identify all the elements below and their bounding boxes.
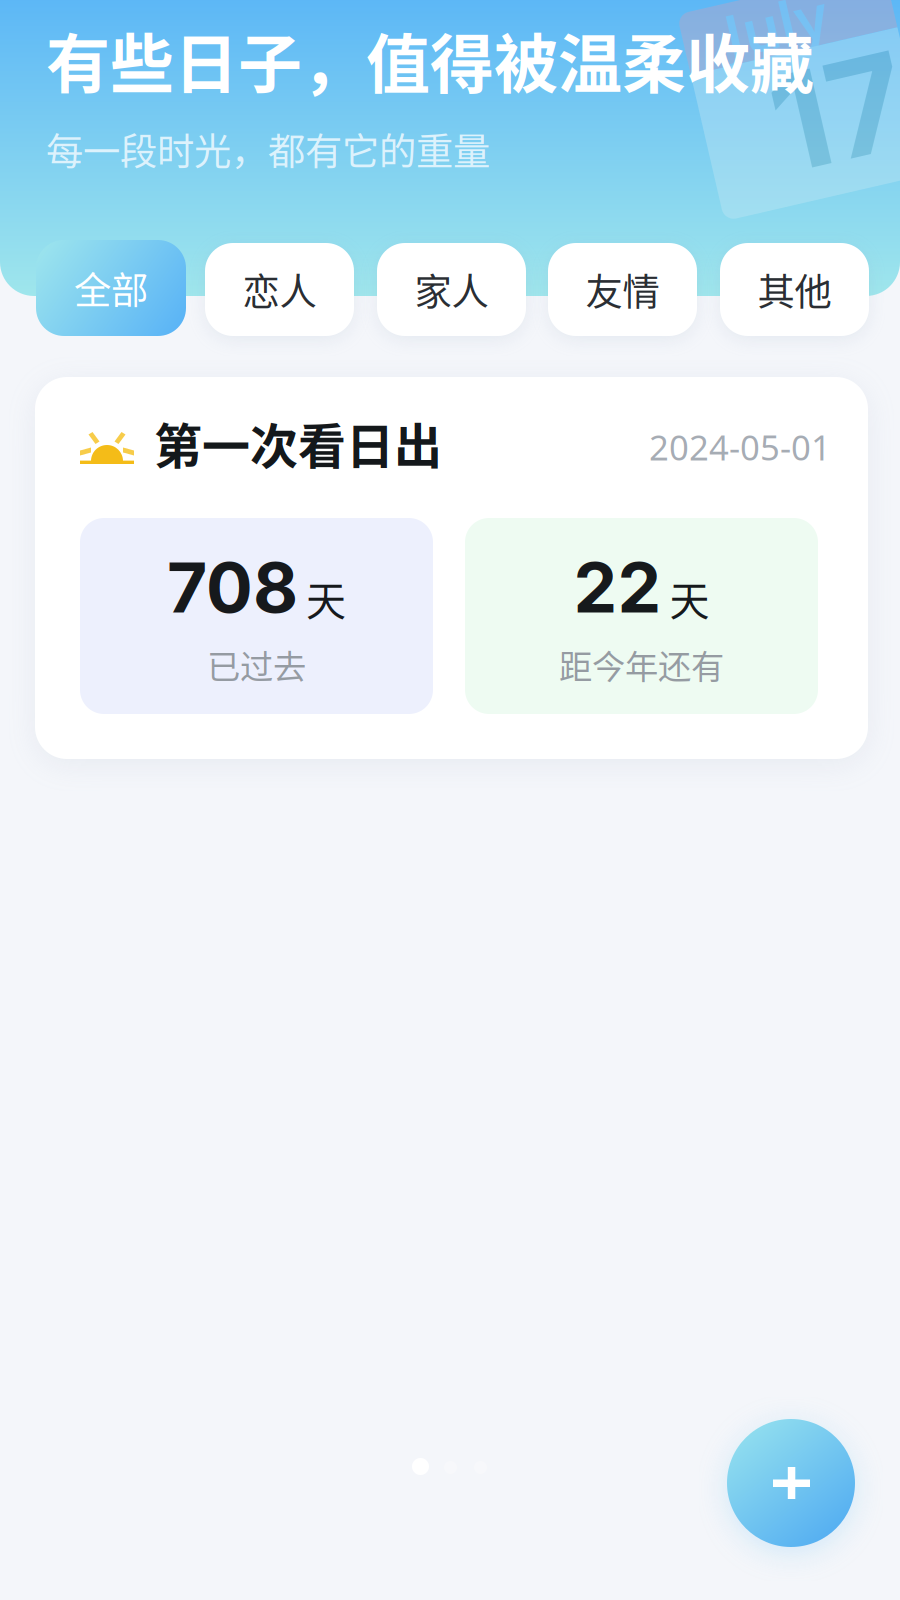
staticText: 第一次看日出 <box>154 408 442 477</box>
staticText: 2024-05-01 <box>649 424 831 470</box>
staticText: 17 <box>766 38 900 200</box>
staticText: 其他 <box>757 262 831 317</box>
staticText: 有些日子，值得被温柔收藏 <box>46 13 814 106</box>
staticText: 距今年还有 <box>559 640 724 689</box>
staticText: July <box>740 0 844 59</box>
button[interactable]: 友情 <box>548 243 697 336</box>
staticText: 708 <box>167 545 298 629</box>
staticText: 恋人 <box>242 262 316 317</box>
staticText: 全部 <box>74 261 148 315</box>
button[interactable]: Add <box>727 1419 855 1547</box>
staticText: 22 <box>573 545 661 629</box>
staticText: 每一段时光，都有它的重量 <box>46 122 490 176</box>
staticText: 友情 <box>585 262 659 317</box>
button[interactable]: 恋人 <box>205 243 354 336</box>
button[interactable]: 其他 <box>720 243 869 336</box>
staticText: 天 <box>306 569 346 627</box>
button[interactable]: 全部 <box>36 240 186 336</box>
button[interactable]: 第一次看日出 <box>35 377 868 759</box>
staticText: 已过去 <box>207 640 306 689</box>
button[interactable]: 家人 <box>377 243 526 336</box>
staticText: 家人 <box>414 262 488 317</box>
staticText: 天 <box>669 569 709 627</box>
